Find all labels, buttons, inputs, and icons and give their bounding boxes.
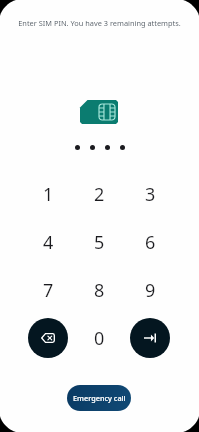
staticText: 8 [94, 278, 105, 303]
staticText: 7 [43, 278, 54, 303]
staticText: 3 [145, 182, 156, 207]
button[interactable]: 2 [79, 174, 119, 214]
staticText: 0 [94, 326, 105, 351]
staticText: Emergency call [73, 393, 126, 403]
button[interactable]: 1 [28, 174, 68, 214]
staticText: 1 [43, 182, 54, 207]
button[interactable]: 7 [28, 270, 68, 310]
button[interactable]: Backspace [28, 318, 68, 358]
staticText: 6 [145, 230, 156, 255]
staticText: Enter SIM PIN. You have 3 remaining atte… [0, 18, 199, 28]
staticText: 9 [145, 278, 156, 303]
button[interactable]: 0 [79, 318, 119, 358]
staticText: 2 [94, 182, 105, 207]
button[interactable]: 5 [79, 222, 119, 262]
button[interactable]: 6 [130, 222, 170, 262]
button[interactable]: 4 [28, 222, 68, 262]
button[interactable]: 3 [130, 174, 170, 214]
button[interactable]: Enter [130, 318, 170, 358]
button[interactable]: Emergency call [67, 385, 131, 411]
staticText: 4 [43, 230, 54, 255]
staticText: 5 [94, 230, 105, 255]
button[interactable]: 9 [130, 270, 170, 310]
button[interactable]: 8 [79, 270, 119, 310]
